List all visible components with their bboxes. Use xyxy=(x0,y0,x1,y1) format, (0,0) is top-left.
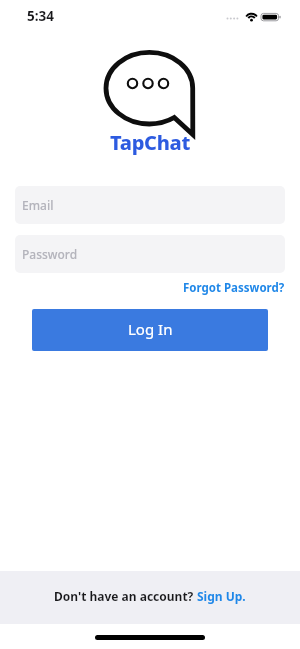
button[interactable]: Password xyxy=(15,235,285,273)
staticText: 5:34 xyxy=(27,7,54,25)
staticText: Don't have an account? xyxy=(54,588,197,604)
button[interactable]: Email xyxy=(15,186,285,224)
button[interactable]: Sign Up. xyxy=(197,588,246,604)
button[interactable]: Log In xyxy=(32,309,268,351)
staticText: Password xyxy=(22,246,78,262)
staticText: Email xyxy=(22,197,54,213)
staticText: TapChat xyxy=(110,129,191,156)
button[interactable]: Forgot Password? xyxy=(183,280,285,296)
staticText: Log In xyxy=(128,319,173,339)
